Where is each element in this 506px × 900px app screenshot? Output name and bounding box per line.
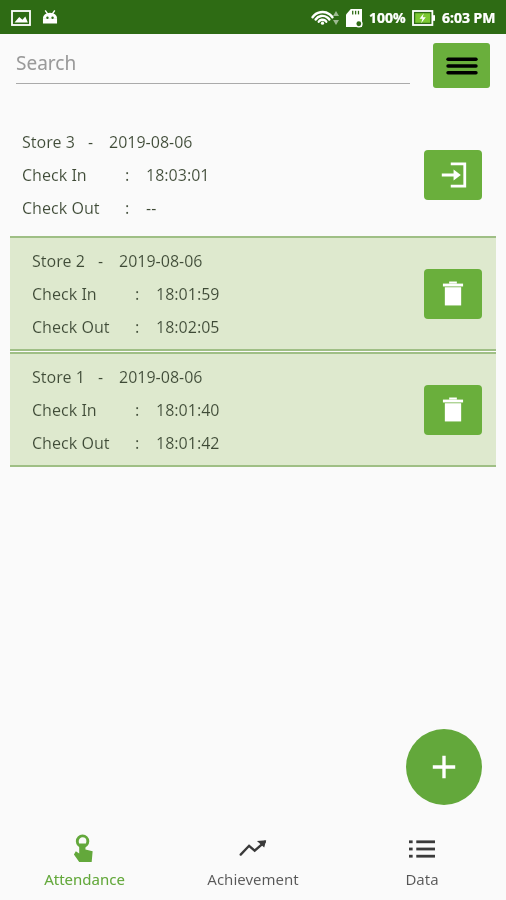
button[interactable]: Attendance	[0, 822, 168, 900]
staticText: Check In	[32, 399, 97, 421]
staticText: Check In	[32, 283, 97, 305]
button[interactable]: Add	[406, 729, 482, 805]
staticText: -	[98, 366, 104, 388]
staticText: 18:02:05	[156, 316, 220, 338]
staticText: --	[146, 197, 157, 219]
staticText: 18:01:42	[156, 432, 220, 454]
staticText: Store 1	[32, 366, 85, 388]
staticText: Check Out	[32, 432, 110, 454]
staticText: :	[135, 316, 140, 338]
staticText: :	[135, 283, 140, 305]
staticText: Check Out	[22, 197, 100, 219]
button[interactable]: Achievement	[168, 822, 337, 900]
staticText: Data	[405, 869, 439, 889]
staticText: 18:01:40	[156, 399, 220, 421]
button[interactable]: Menu	[433, 43, 490, 88]
button[interactable]: Store 3	[0, 118, 506, 231]
staticText: Store 3	[22, 131, 75, 153]
staticText: 100%	[369, 8, 406, 27]
button[interactable]: Check in	[424, 150, 482, 200]
staticText: Store 2	[32, 250, 85, 272]
staticText: -	[88, 131, 94, 153]
staticText: 18:03:01	[146, 164, 210, 186]
staticText: 2019-08-06	[119, 250, 203, 272]
staticText: Achievement	[207, 869, 299, 889]
staticText: 2019-08-06	[109, 131, 193, 153]
staticText: Attendance	[44, 869, 125, 889]
button[interactable]: Store 1	[10, 353, 496, 466]
staticText: 2019-08-06	[119, 366, 203, 388]
staticText: :	[125, 197, 130, 219]
button[interactable]: Delete	[424, 385, 482, 435]
staticText: 6:03 PM	[442, 8, 496, 27]
staticText: Search	[16, 50, 77, 76]
staticText: :	[135, 432, 140, 454]
button[interactable]: Delete	[424, 269, 482, 319]
staticText: 18:01:59	[156, 283, 220, 305]
staticText: Check Out	[32, 316, 110, 338]
staticText: :	[135, 399, 140, 421]
staticText: -	[98, 250, 104, 272]
staticText: :	[125, 164, 130, 186]
button[interactable]: Store 2	[10, 237, 496, 350]
button[interactable]: Search	[16, 50, 410, 84]
staticText: Check In	[22, 164, 87, 186]
button[interactable]: Data	[337, 822, 506, 900]
